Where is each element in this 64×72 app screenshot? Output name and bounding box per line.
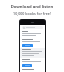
button[interactable]: Download — [20, 58, 45, 68]
button[interactable]: Download — [20, 38, 45, 48]
button[interactable] — [20, 68, 45, 72]
button[interactable]: Download — [22, 64, 32, 67]
button[interactable] — [20, 30, 45, 38]
button[interactable] — [20, 48, 45, 58]
staticText: 10,000 books for free! — [0, 11, 64, 16]
button[interactable]: Download — [22, 44, 33, 47]
button[interactable]: Search — [22, 26, 43, 29]
staticText: Download and listen — [0, 4, 64, 10]
